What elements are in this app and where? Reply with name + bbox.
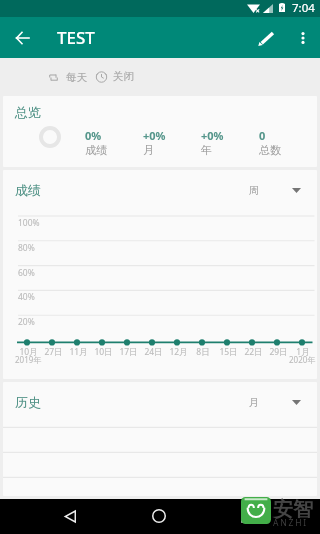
staticText: 0% [85,128,102,143]
staticText: 100% [18,217,40,229]
staticText: 40% [18,291,35,303]
staticText: 每天 [66,71,87,84]
staticText: +0% [143,128,166,143]
staticText: +0% [201,128,224,143]
staticText: TEST [57,26,95,49]
button[interactable]: 周 [241,184,317,197]
staticText: 80% [18,242,35,254]
staticText: 7:04 [292,0,315,16]
staticText: 月 [249,396,259,409]
staticText: 历史 [15,394,41,410]
button[interactable]: 关闭 [90,66,140,87]
staticText: 关闭 [113,70,134,83]
button[interactable]: 0% [85,128,143,157]
button[interactable]: +0% [143,128,201,157]
button[interactable]: Home [147,504,171,528]
staticText: 周 [249,184,259,197]
staticText: 60% [18,267,35,279]
staticText: 年 [201,143,212,157]
staticText: 15日 [219,346,238,358]
button[interactable]: Recents [236,504,260,528]
staticText: 20% [18,316,35,328]
staticText: 月 [143,143,154,157]
button[interactable]: Edit [252,24,280,52]
staticText: 12月 [169,346,188,358]
button[interactable]: +0% [201,128,259,157]
button[interactable]: 月 [241,396,317,409]
staticText: 11月 [69,346,88,358]
staticText: 总览 [15,104,41,120]
staticText: 成绩 [85,143,107,157]
button[interactable]: Back [58,504,82,528]
staticText: 0 [259,128,266,143]
staticText: 2020年 [289,354,316,365]
button[interactable]: Back [9,25,35,51]
staticText: 总数 [259,143,281,157]
staticText: 1月 [296,346,310,358]
staticText: ANZHI [273,517,308,529]
staticText: 22日 [244,346,263,358]
staticText: 29日 [269,346,288,358]
staticText: 24日 [144,346,163,358]
staticText: 2019年 [15,354,42,365]
staticText: 10日 [94,346,113,358]
button[interactable]: 每天 [43,67,93,88]
staticText: 成绩 [15,182,41,198]
button[interactable]: 0 [259,128,317,157]
staticText: 8日 [196,346,210,358]
staticText: 10月 [19,346,38,358]
staticText: 安智 [273,497,313,522]
button[interactable]: More options [290,25,316,51]
staticText: 27日 [44,346,63,358]
staticText: 17日 [119,346,138,358]
